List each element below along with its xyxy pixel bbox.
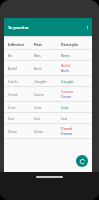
- staticText: Participle: [61, 42, 88, 47]
- staticText: Comen: [61, 89, 74, 94]
- staticText: Draw: [8, 129, 34, 134]
- staticText: Infinitive: [8, 42, 34, 47]
- staticText: Cut: [34, 116, 61, 121]
- staticText: Come: [8, 92, 34, 97]
- button[interactable]: Catch: [4, 76, 92, 86]
- staticText: Came: [34, 92, 61, 97]
- staticText: Built: [34, 66, 61, 71]
- button[interactable]: More options: [83, 18, 92, 36]
- staticText: Built: [61, 68, 69, 73]
- staticText: Past: [34, 42, 61, 47]
- staticText: Drawd: [61, 126, 73, 131]
- staticText: Cost: [61, 105, 69, 110]
- button[interactable]: Cut: [4, 113, 92, 123]
- staticText: Be: [8, 53, 34, 58]
- button[interactable]: Cost: [4, 102, 92, 112]
- staticText: Caught: [34, 79, 61, 84]
- staticText: Cut: [8, 116, 34, 121]
- staticText: Cut: [61, 116, 67, 121]
- staticText: Drawn: [61, 131, 73, 136]
- staticText: Cost: [8, 105, 34, 110]
- staticText: Caught: [61, 79, 74, 84]
- staticText: Build: [8, 66, 34, 71]
- button[interactable]: Come: [4, 87, 92, 101]
- button[interactable]: Build: [4, 61, 92, 75]
- staticText: Build: [61, 63, 70, 68]
- button[interactable]: Restart: [76, 155, 88, 167]
- button[interactable]: Be: [4, 50, 92, 60]
- button[interactable]: Draw: [4, 124, 92, 138]
- staticText: Been: [61, 53, 70, 58]
- staticText: Was: [34, 53, 61, 58]
- staticText: Come: [61, 94, 71, 99]
- staticText: Drew: [34, 129, 61, 134]
- staticText: To practise: [8, 25, 29, 30]
- staticText: Cost: [34, 105, 61, 110]
- staticText: Catch: [8, 79, 34, 84]
